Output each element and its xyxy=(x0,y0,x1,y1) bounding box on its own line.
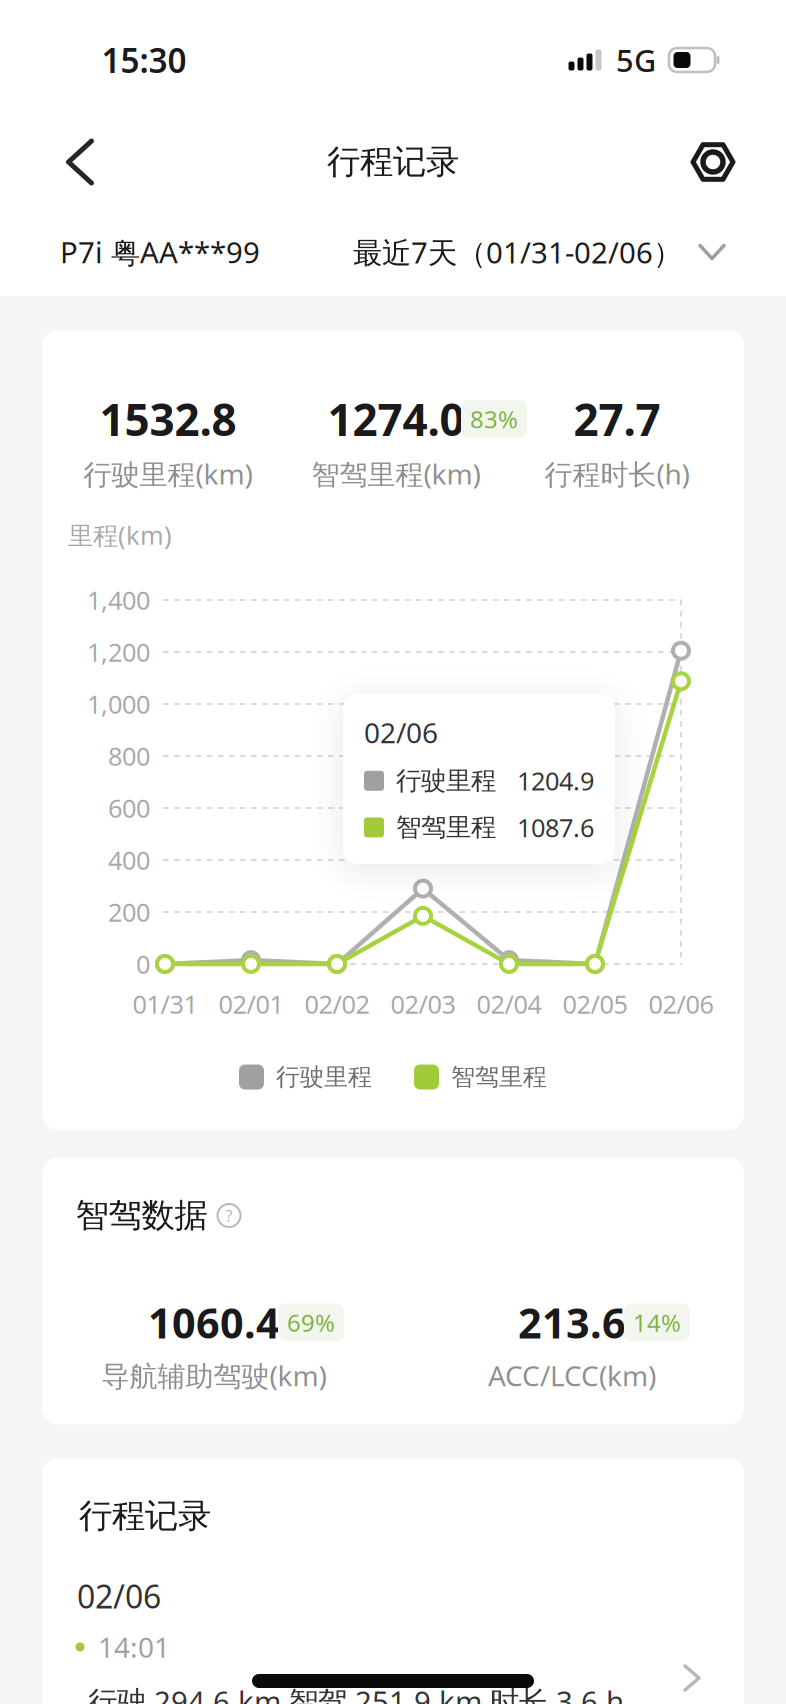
button[interactable]: 智驾数据说明 xyxy=(217,1204,240,1227)
staticText: 200 xyxy=(108,895,150,929)
staticText: 14:01 xyxy=(98,1628,170,1666)
staticText: 14% xyxy=(633,1306,681,1338)
staticText: 01/31 xyxy=(132,987,197,1021)
staticText: 1274.0 xyxy=(327,390,464,448)
button[interactable]: 设置 xyxy=(682,133,744,191)
staticText: 行程记录 xyxy=(327,141,459,182)
staticText: 行驶里程 xyxy=(276,1062,372,1092)
staticText: 1087.6 xyxy=(517,811,594,844)
staticText: 最近7天（01/31-02/06） xyxy=(353,232,682,271)
button[interactable]: 返回 xyxy=(54,127,105,197)
staticText: 智驾里程 xyxy=(396,812,496,843)
staticText: 600 xyxy=(108,791,150,825)
staticText: 1,000 xyxy=(87,687,150,721)
staticText: 导航辅助驾驶(km) xyxy=(101,1357,326,1394)
staticText: 1,200 xyxy=(87,635,150,669)
staticText: 27.7 xyxy=(573,390,660,448)
staticText: 行驶里程(km) xyxy=(83,455,252,492)
staticText: 智驾数据 xyxy=(75,1195,207,1236)
staticText: 02/06 xyxy=(77,1575,161,1617)
staticText: 02/06 xyxy=(364,714,438,751)
staticText: 02/01 xyxy=(218,987,283,1021)
staticText: 5G xyxy=(616,40,656,80)
staticText: 里程(km) xyxy=(68,518,172,552)
staticText: P7i 粤AA***99 xyxy=(60,232,260,271)
staticText: 400 xyxy=(108,843,150,877)
staticText: 1060.4 xyxy=(148,1295,280,1350)
staticText: 1204.9 xyxy=(517,764,594,797)
staticText: 15:30 xyxy=(101,38,186,82)
staticText: 1532.8 xyxy=(99,390,236,448)
staticText: 智驾里程(km) xyxy=(311,455,480,492)
staticText: ? xyxy=(225,1205,232,1226)
staticText: 0 xyxy=(136,947,150,981)
staticText: 1,400 xyxy=(87,583,150,617)
staticText: 02/04 xyxy=(476,987,541,1021)
staticText: 83% xyxy=(470,403,518,435)
staticText: 行驶里程 xyxy=(396,765,496,796)
staticText: 02/02 xyxy=(304,987,369,1021)
staticText: 智驾里程 xyxy=(451,1062,547,1092)
button[interactable]: 14:01 xyxy=(42,1458,744,1704)
staticText: ACC/LCC(km) xyxy=(488,1357,656,1394)
staticText: 800 xyxy=(108,739,150,773)
staticText: 69% xyxy=(287,1306,335,1338)
staticText: 行驶 294.6 km 智驾 251.9 km 时长 3.6 h xyxy=(88,1681,624,1704)
staticText: 213.6 xyxy=(518,1295,626,1350)
staticText: 02/03 xyxy=(390,987,455,1021)
staticText: 02/05 xyxy=(562,987,627,1021)
staticText: 02/06 xyxy=(648,987,713,1021)
staticText: 行程时长(h) xyxy=(544,455,689,492)
staticText: 行程记录 xyxy=(79,1495,211,1536)
button[interactable]: 最近7天（01/31-02/06） xyxy=(353,232,724,271)
